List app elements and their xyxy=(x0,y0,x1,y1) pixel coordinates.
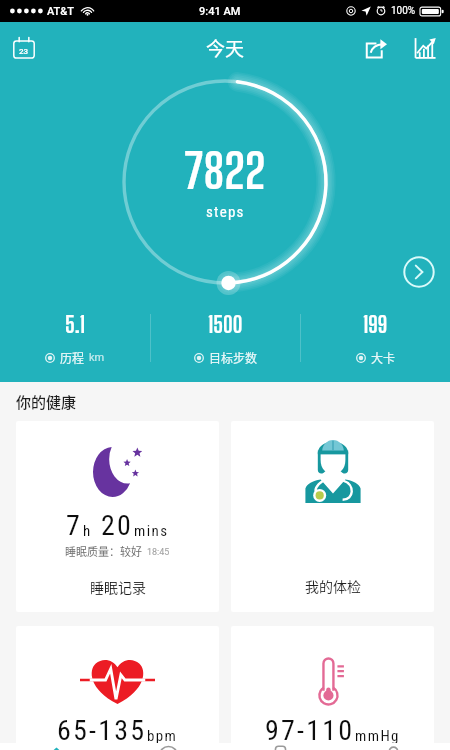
button[interactable]: 设备 xyxy=(224,743,337,750)
staticText: 9:41 AM xyxy=(199,5,241,18)
staticText: 5.1 xyxy=(65,311,86,337)
button[interactable]: Share xyxy=(352,24,400,72)
staticText: 7 xyxy=(66,509,83,542)
staticText: steps xyxy=(206,203,245,221)
staticText: 睡眠质量：较好 xyxy=(65,543,142,559)
button[interactable]: 97-110 xyxy=(231,626,434,750)
button[interactable]: 65-135 xyxy=(16,626,219,750)
button[interactable]: Calendar xyxy=(0,24,48,72)
staticText: mmHg xyxy=(355,727,400,745)
staticText: 23 xyxy=(19,47,29,56)
staticText: 100% xyxy=(391,5,416,17)
staticText: AT&T xyxy=(47,5,75,18)
button[interactable]: 我的 xyxy=(337,743,450,750)
staticText: 今天 xyxy=(206,34,245,62)
button[interactable]: Details xyxy=(403,256,435,288)
button[interactable]: 发现 xyxy=(112,743,224,750)
staticText: 7822 xyxy=(184,142,266,199)
staticText: 我的体检 xyxy=(305,576,361,596)
staticText: 目标步数 xyxy=(209,349,258,366)
staticText: 1500 xyxy=(208,311,243,337)
button[interactable]: 199 xyxy=(301,311,450,366)
staticText: 199 xyxy=(363,311,388,337)
button[interactable]: 1500 xyxy=(151,311,300,366)
staticText: bpm xyxy=(147,727,178,745)
button[interactable]: 我的体检 xyxy=(231,421,434,612)
button[interactable]: 7 xyxy=(16,421,219,612)
button[interactable]: 5.1 xyxy=(0,311,150,366)
staticText: km xyxy=(89,351,105,364)
staticText: 20 xyxy=(101,509,134,542)
staticText: mins xyxy=(134,522,169,540)
staticText: 你的健康 xyxy=(16,391,77,413)
button[interactable]: 健康 xyxy=(0,743,112,750)
staticText: 65-135 xyxy=(57,714,147,747)
staticText: 睡眠记录 xyxy=(90,577,146,597)
staticText: 历程 xyxy=(60,349,85,366)
staticText: h xyxy=(83,522,92,540)
staticText: 大卡 xyxy=(371,349,396,366)
staticText: 18:45 xyxy=(147,547,170,558)
button[interactable]: Statistics xyxy=(400,23,450,73)
staticText: 97-110 xyxy=(265,714,355,747)
